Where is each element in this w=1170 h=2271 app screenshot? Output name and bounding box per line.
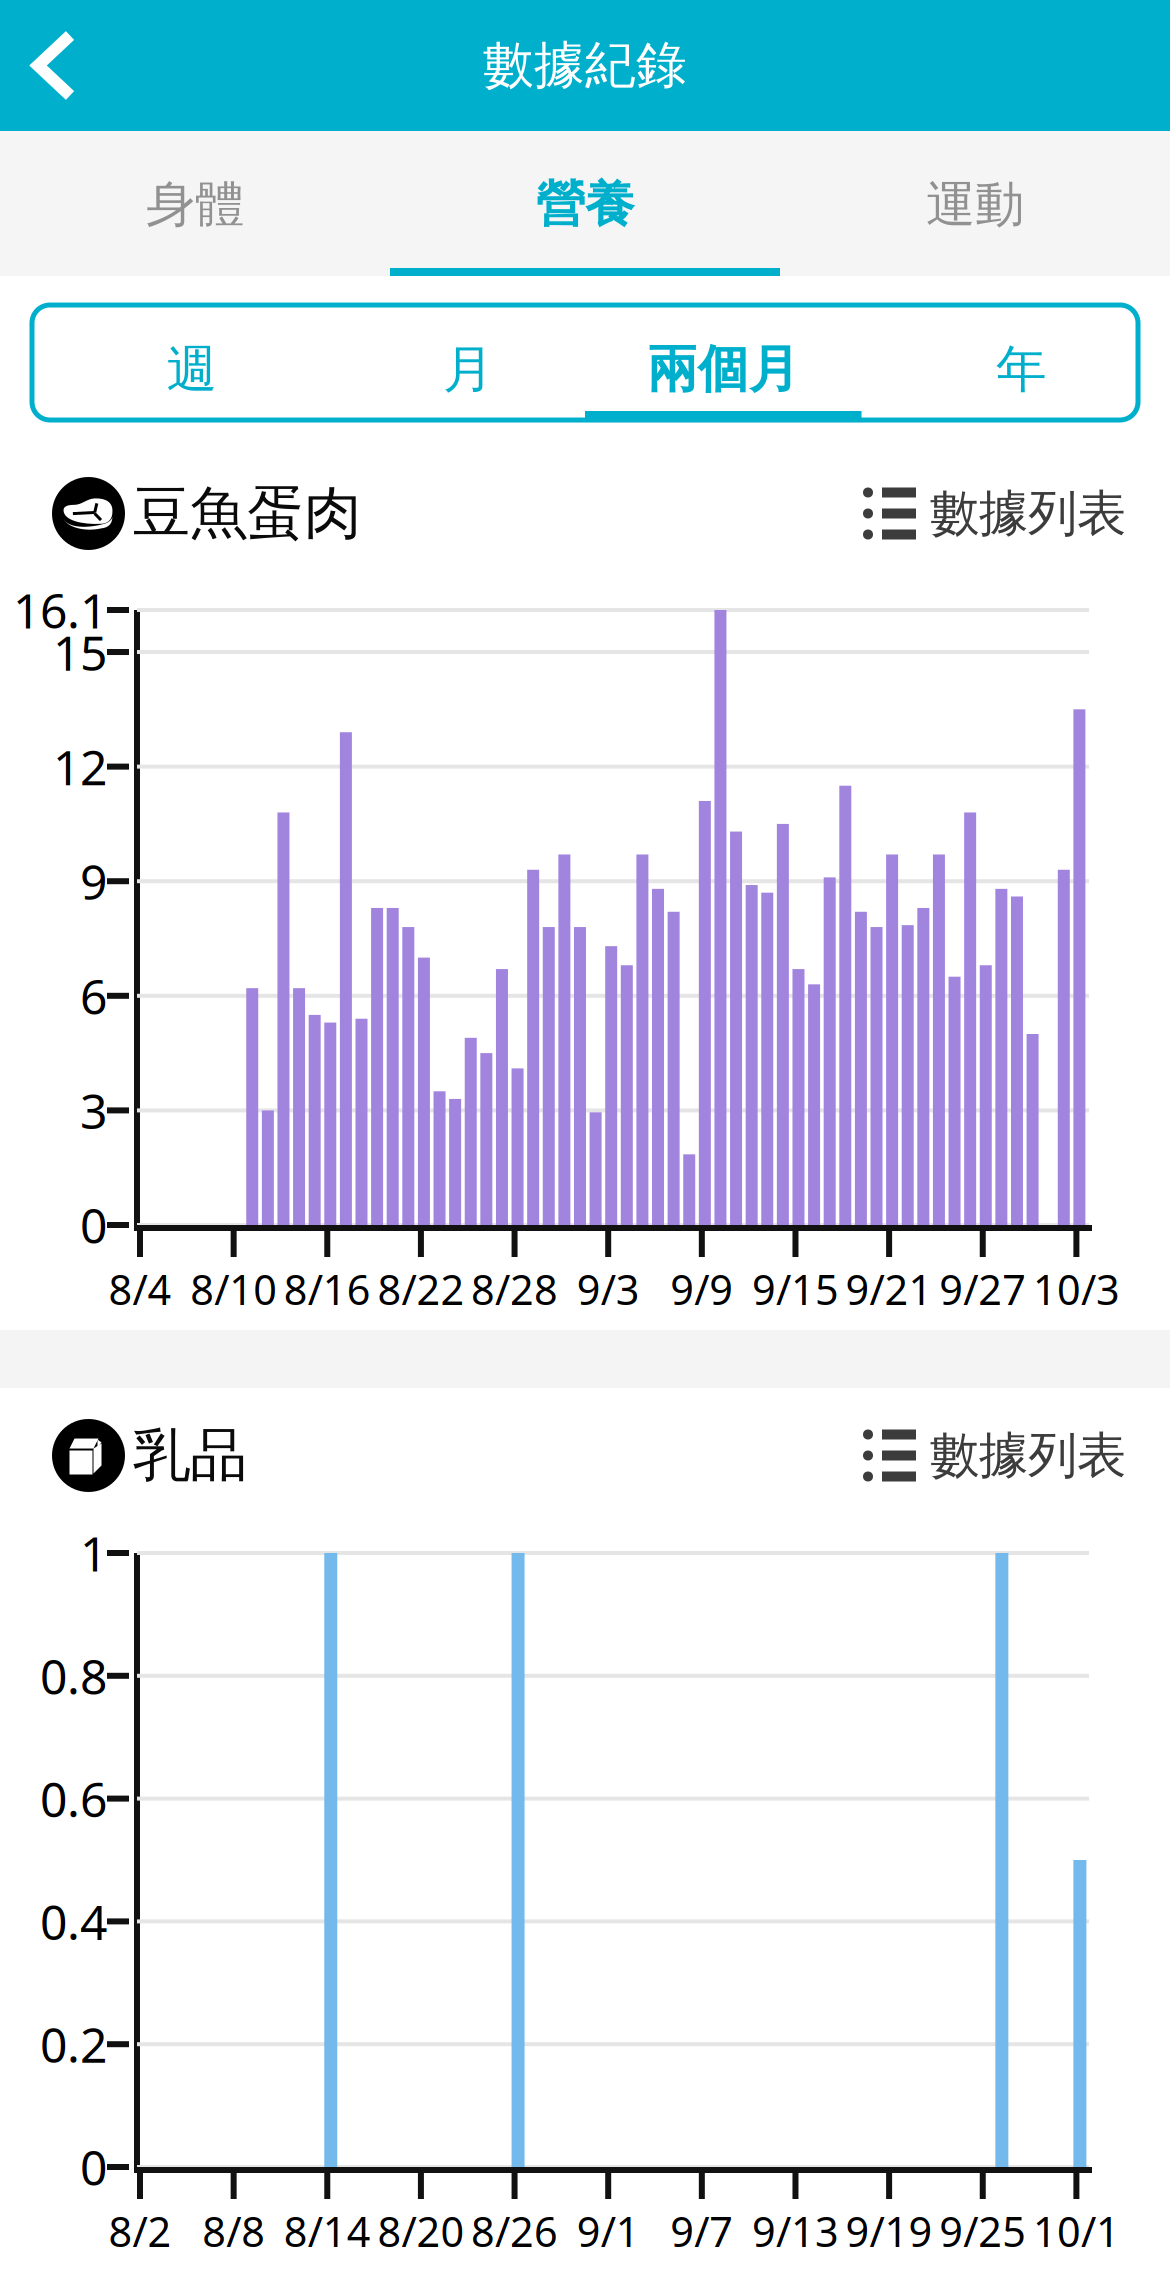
staticText: 數據列表 [930, 1425, 1126, 1486]
staticText: 運動 [926, 174, 1024, 235]
staticText: 營養 [536, 174, 634, 235]
staticText: 數據紀錄 [483, 34, 687, 97]
staticText: 8/20 [377, 2204, 464, 2258]
staticText: 9/27 [939, 1262, 1026, 1316]
staticText: 16.1 [13, 578, 107, 642]
staticText: 0 [80, 2135, 107, 2199]
staticText: 3 [80, 1078, 107, 1142]
staticText: 9 [80, 849, 107, 913]
staticText: 0.8 [40, 1644, 107, 1708]
staticText: 0 [80, 1193, 107, 1257]
staticText: 豆魚蛋肉 [133, 478, 361, 549]
staticText: 15 [53, 620, 107, 684]
staticText: 數據列表 [930, 483, 1126, 544]
staticText: 8/10 [190, 1262, 277, 1316]
staticText: 0.6 [40, 1767, 107, 1830]
staticText: 10/3 [1033, 1262, 1120, 1316]
staticText: 8/8 [202, 2204, 265, 2258]
staticText: 兩個月 [647, 338, 800, 401]
staticText: 12 [53, 735, 107, 798]
staticText: 8/14 [284, 2204, 371, 2258]
staticText: 年 [996, 338, 1047, 401]
button[interactable]: 數據列表 [863, 469, 1126, 558]
staticText: 10/1 [1033, 2204, 1120, 2258]
button[interactable]: 運動 [780, 131, 1170, 276]
staticText: 9/13 [752, 2204, 839, 2258]
staticText: 8/22 [377, 1262, 464, 1316]
staticText: 1 [80, 1521, 107, 1585]
staticText: 8/26 [471, 2204, 558, 2258]
button[interactable]: Back [0, 0, 104, 131]
staticText: 8/4 [108, 1262, 171, 1316]
staticText: 8/2 [108, 2204, 171, 2258]
button[interactable]: 身體 [0, 131, 390, 276]
staticText: 月 [443, 338, 494, 401]
staticText: 週 [166, 338, 217, 401]
staticText: 9/9 [670, 1262, 733, 1316]
staticText: 乳品 [133, 1420, 247, 1491]
staticText: 9/7 [670, 2204, 733, 2258]
button[interactable]: 營養 [390, 131, 780, 276]
staticText: 9/25 [939, 2204, 1026, 2258]
button[interactable]: 月 [308, 305, 585, 420]
staticText: 0.4 [40, 1889, 107, 1953]
staticText: 8/16 [284, 1262, 371, 1316]
staticText: 9/21 [846, 1262, 933, 1316]
staticText: 9/19 [846, 2204, 933, 2258]
staticText: 9/15 [752, 1262, 839, 1316]
button[interactable]: 數據列表 [863, 1411, 1126, 1500]
button[interactable]: 年 [861, 305, 1138, 420]
staticText: 8/28 [471, 1262, 558, 1316]
staticText: 身體 [146, 174, 244, 235]
button[interactable]: 兩個月 [585, 305, 861, 420]
staticText: 9/3 [577, 1262, 640, 1316]
button[interactable]: 週 [32, 305, 308, 420]
staticText: 0.2 [40, 2012, 107, 2076]
staticText: 9/1 [577, 2204, 640, 2258]
staticText: 6 [80, 964, 107, 1028]
